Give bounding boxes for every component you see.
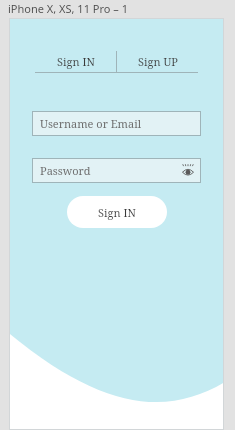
- button[interactable]: Sign IN: [67, 196, 167, 228]
- staticText: Sign IN: [98, 205, 136, 220]
- staticText: iPhone X, XS, 11 Pro – 1: [8, 1, 128, 16]
- button[interactable]: Sign UP: [117, 51, 198, 72]
- button[interactable]: Username or Email: [32, 111, 201, 136]
- button[interactable]: Password: [32, 158, 201, 183]
- staticText: Sign IN: [57, 54, 95, 69]
- button[interactable]: Sign IN: [35, 51, 116, 72]
- staticText: Password: [40, 163, 91, 178]
- staticText: Username or Email: [40, 116, 142, 131]
- button[interactable]: Show password: [180, 163, 196, 179]
- staticText: Sign UP: [138, 54, 178, 69]
